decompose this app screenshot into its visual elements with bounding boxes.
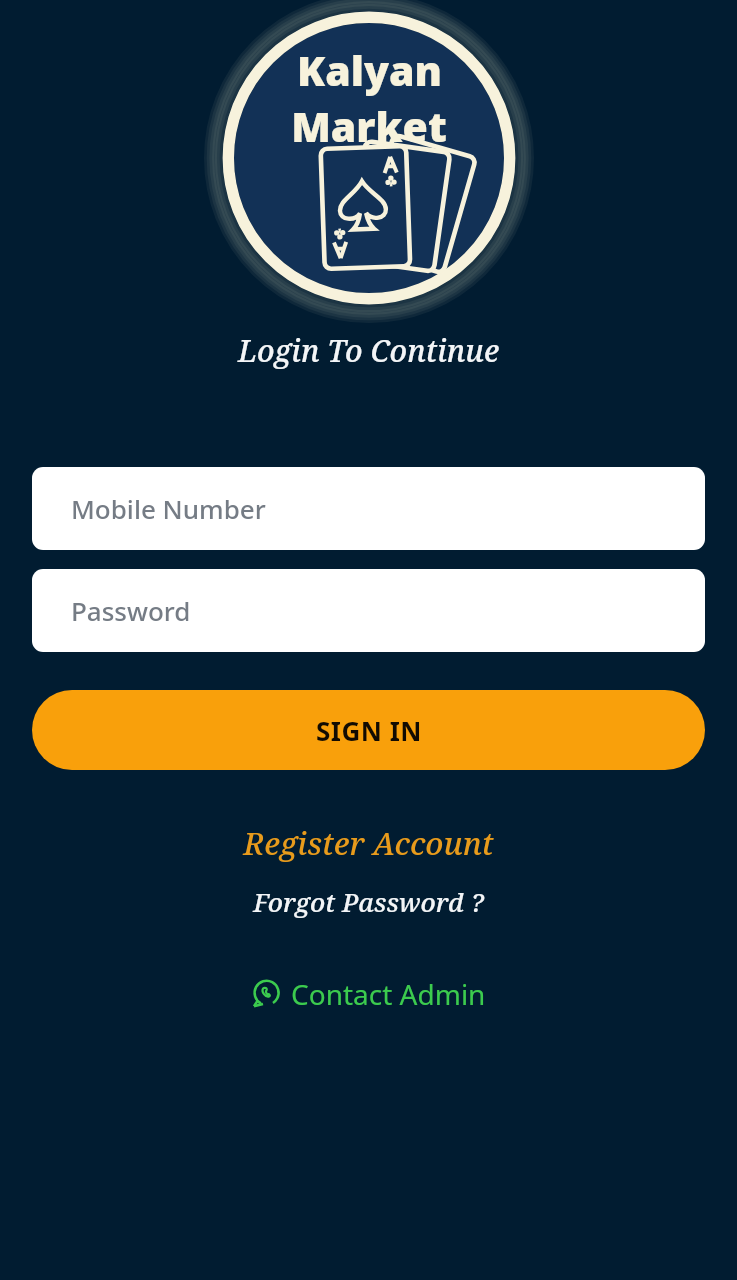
button[interactable]: SIGN IN — [32, 690, 705, 770]
staticText: Mobile Number — [71, 491, 266, 526]
staticText: Contact Admin — [291, 975, 486, 1013]
button[interactable]: Password — [32, 569, 705, 652]
button[interactable]: Forgot Password ? — [0, 884, 737, 919]
staticText: Market — [291, 98, 447, 154]
button[interactable]: Mobile Number — [32, 467, 705, 550]
staticText: Forgot Password ? — [253, 884, 484, 919]
staticText: Register Account — [243, 822, 494, 864]
button[interactable]: Register Account — [0, 822, 737, 864]
staticText: Login To Continue — [0, 330, 737, 371]
staticText: SIGN IN — [316, 713, 422, 748]
button[interactable]: Contact Admin — [239, 971, 498, 1017]
staticText: Password — [71, 593, 191, 628]
staticText: Kalyan — [297, 42, 442, 98]
